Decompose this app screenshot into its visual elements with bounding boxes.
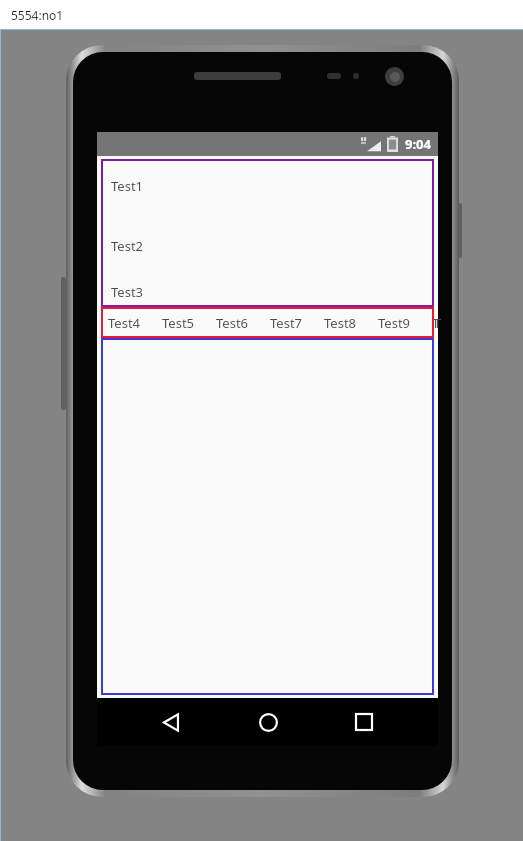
- staticText: 9:04: [405, 135, 431, 153]
- staticText: Test9: [378, 314, 411, 332]
- button[interactable]: Test9: [378, 314, 432, 332]
- button[interactable]: Test7: [270, 314, 324, 332]
- staticText: Test7: [270, 314, 303, 332]
- button[interactable]: Test4: [108, 314, 162, 332]
- staticText: 5554:no1: [11, 7, 64, 23]
- staticText: Test2: [111, 237, 144, 255]
- button[interactable]: Test1: [101, 159, 434, 195]
- button[interactable]: Test8: [324, 314, 378, 332]
- button[interactable]: Test3: [101, 255, 434, 301]
- button[interactable]: Test5: [162, 314, 216, 332]
- staticText: Test3: [111, 283, 144, 301]
- staticText: Test6: [216, 314, 249, 332]
- staticText: Test4: [108, 314, 141, 332]
- button[interactable]: Back: [148, 699, 194, 745]
- button[interactable]: Test2: [101, 195, 434, 255]
- button[interactable]: Home: [245, 699, 291, 745]
- staticText: Test8: [324, 314, 357, 332]
- button[interactable]: Test6: [216, 314, 270, 332]
- staticText: Test5: [162, 314, 195, 332]
- button[interactable]: Recent apps: [341, 699, 387, 745]
- staticText: Test1: [111, 177, 144, 195]
